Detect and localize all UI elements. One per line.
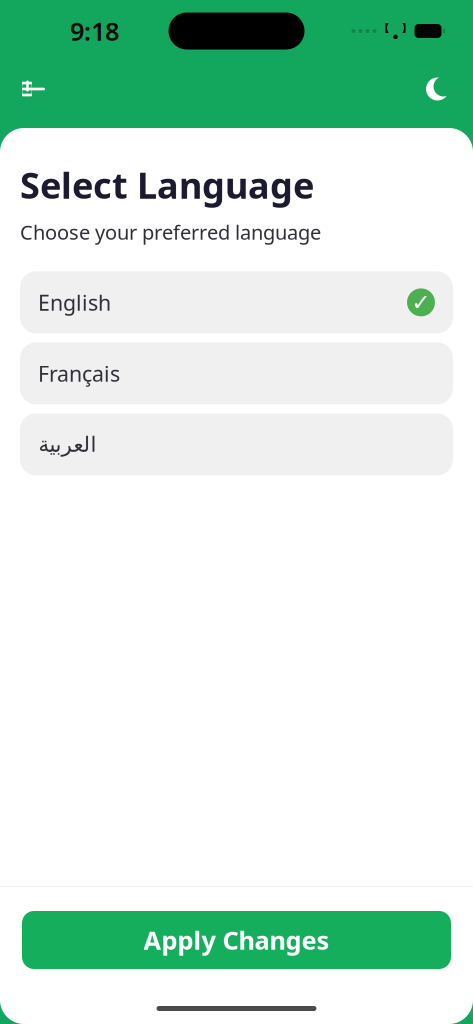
- staticText: Français: [38, 359, 120, 387]
- button[interactable]: العربية: [20, 413, 453, 475]
- button[interactable]: Toggle dark mode: [415, 65, 463, 113]
- button[interactable]: English: [20, 271, 453, 333]
- button[interactable]: Apply Changes: [22, 911, 451, 969]
- staticText: Select Language: [20, 161, 314, 209]
- staticText: 9:18: [70, 14, 119, 48]
- staticText: English: [38, 288, 111, 316]
- staticText: ✓: [411, 289, 430, 315]
- staticText: Apply Changes: [143, 923, 329, 957]
- button[interactable]: Back: [10, 65, 58, 113]
- staticText: Choose your preferred language: [20, 219, 321, 245]
- button[interactable]: Français: [20, 342, 453, 404]
- staticText: العربية: [38, 432, 96, 456]
